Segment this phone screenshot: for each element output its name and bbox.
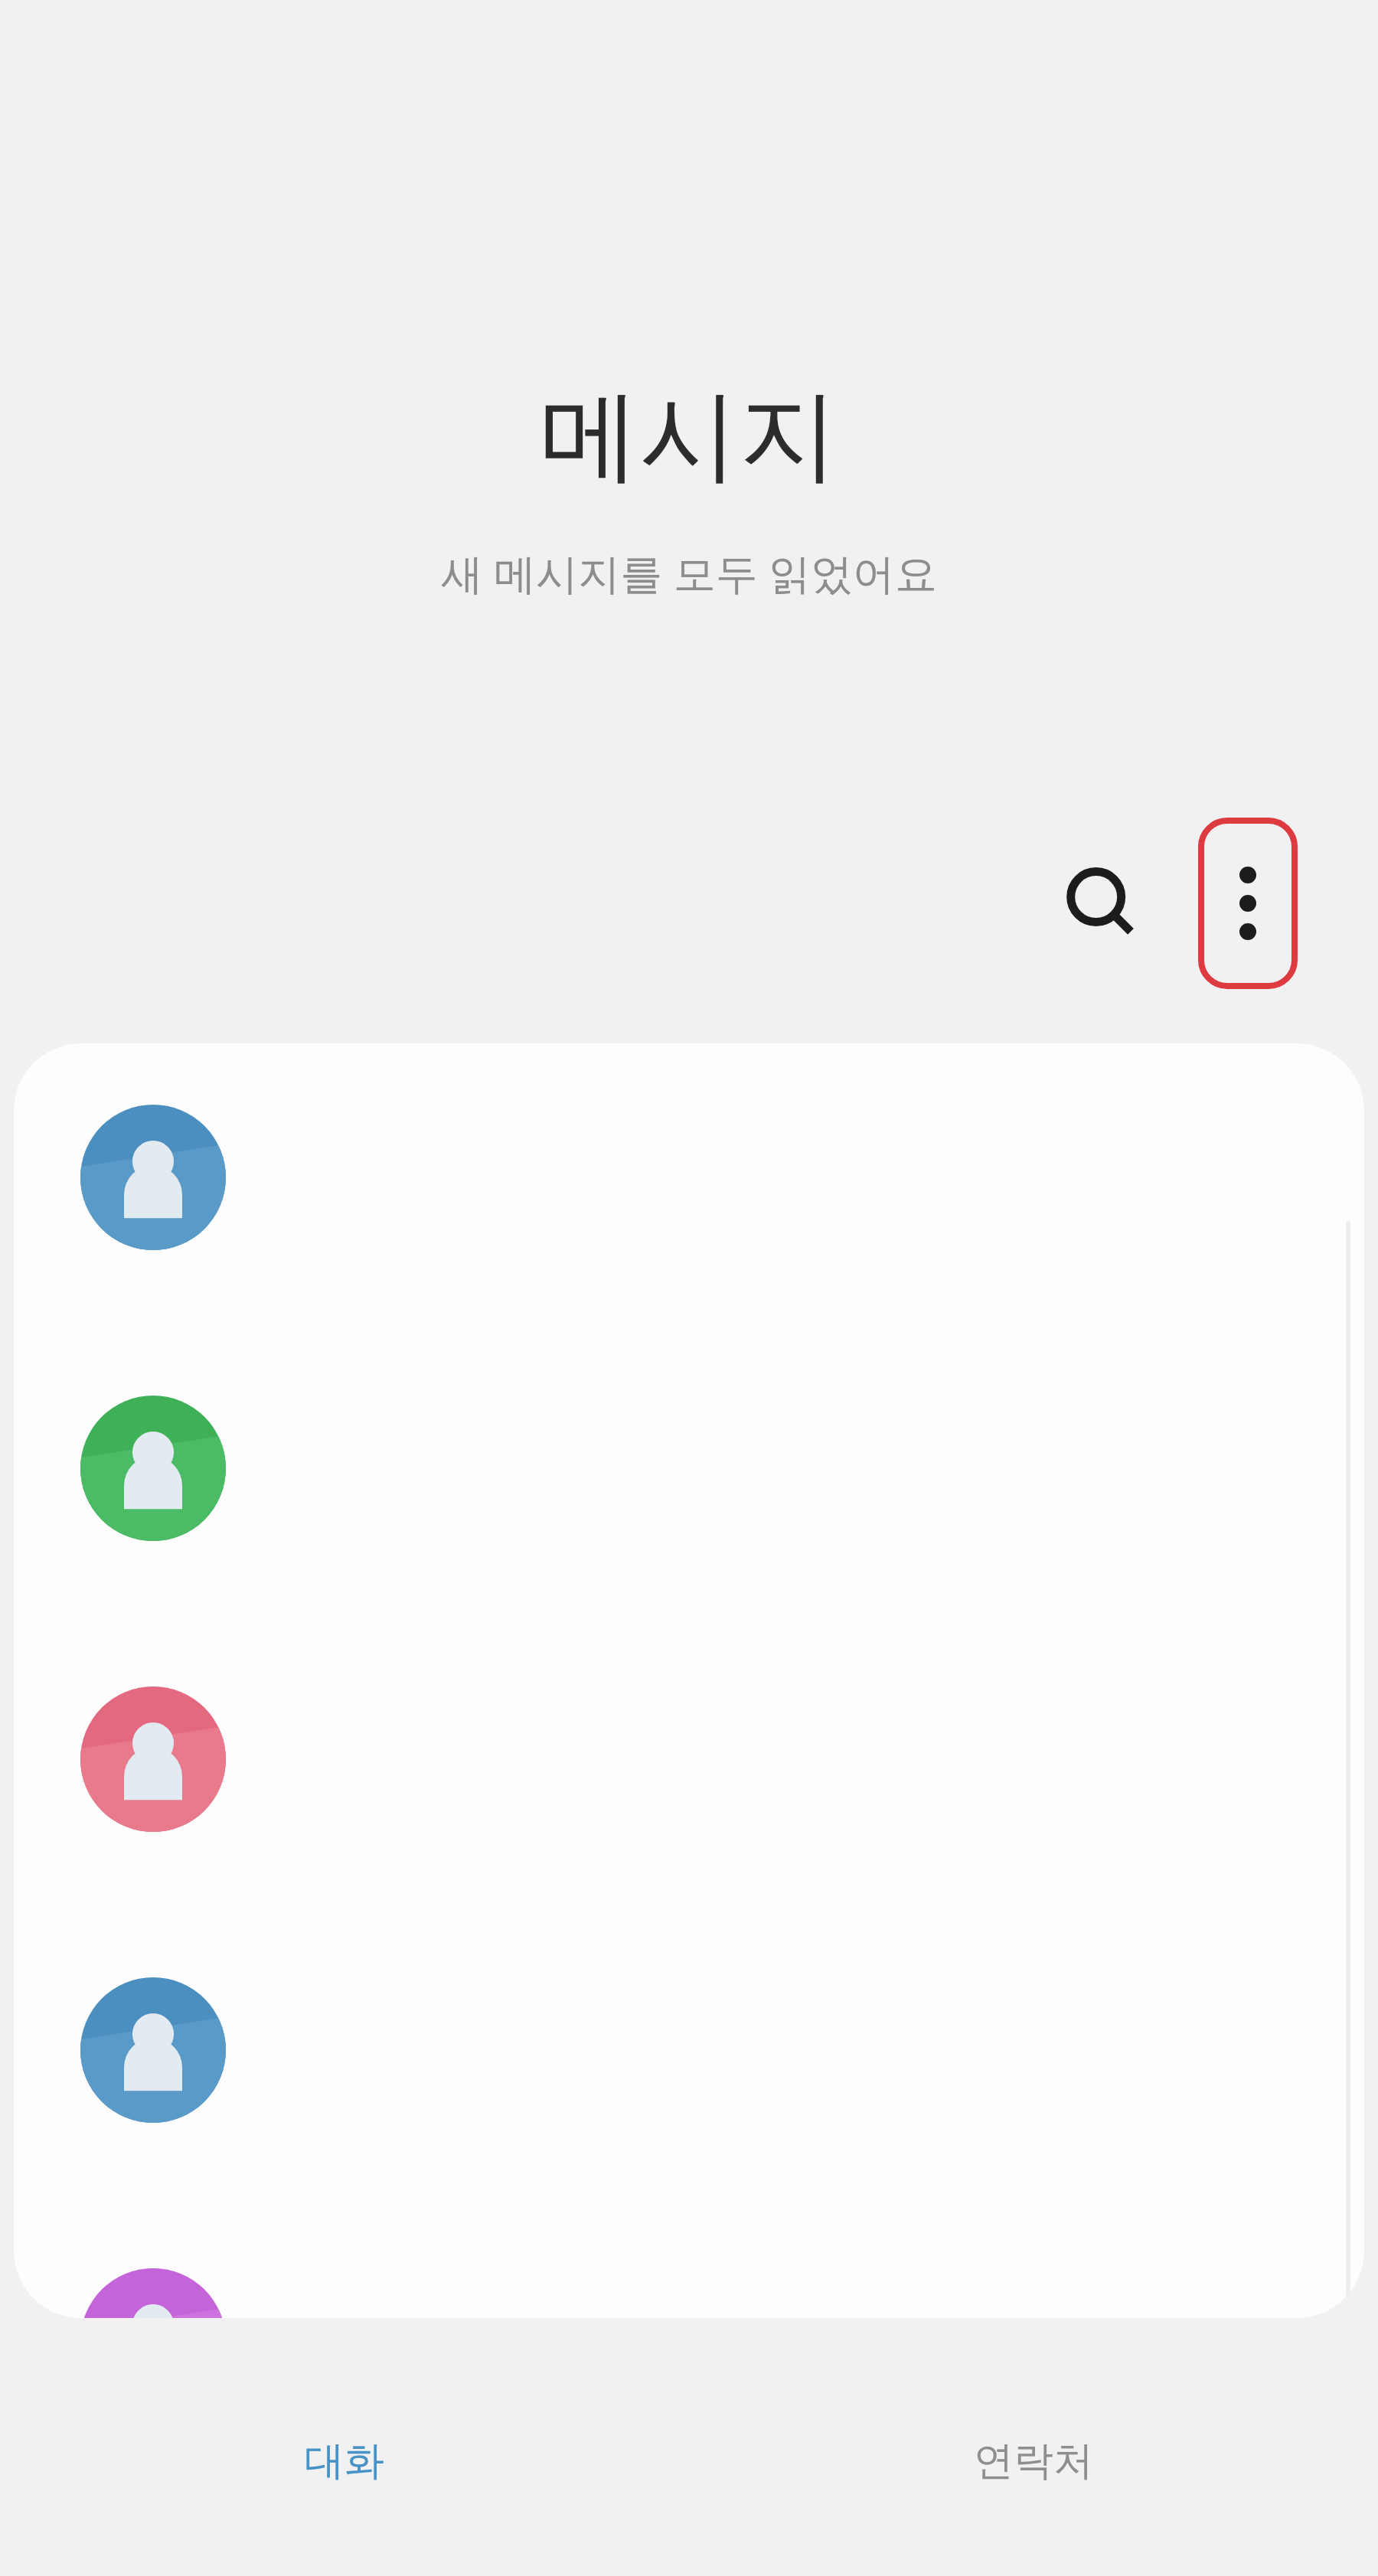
button[interactable]: 연락처 [689, 2343, 1378, 2576]
staticText: 새 메시지를 모두 읽었어요 [441, 544, 937, 601]
staticText: 대화 [305, 2436, 384, 2486]
button[interactable]: Search [1026, 819, 1179, 991]
button[interactable]: Conversation 5 [14, 2196, 1364, 2318]
button[interactable]: Conversation 2 [14, 1323, 1364, 1614]
button[interactable]: Conversation 1 [14, 1043, 1364, 1323]
staticText: 메시지 [540, 374, 838, 499]
button[interactable]: More options [1198, 818, 1298, 989]
button[interactable]: Conversation 3 [14, 1614, 1364, 1905]
button[interactable]: Conversation 4 [14, 1905, 1364, 2196]
button[interactable]: 대화 [0, 2343, 689, 2576]
staticText: 연락처 [974, 2436, 1093, 2486]
